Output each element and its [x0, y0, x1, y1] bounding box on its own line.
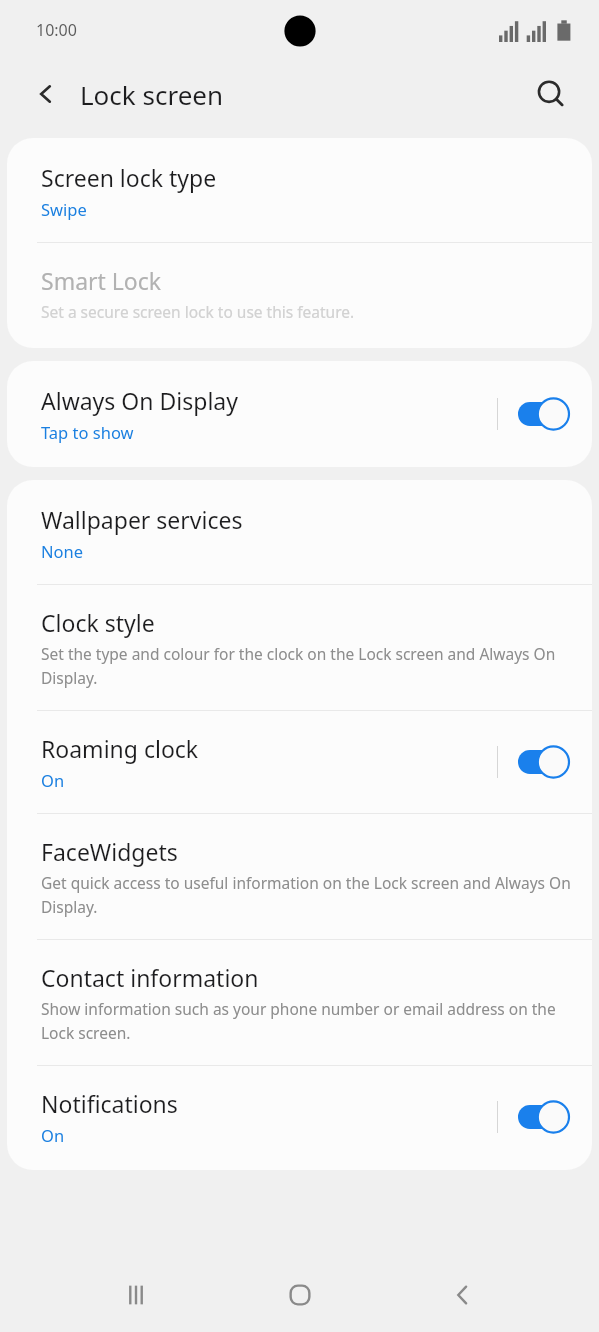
staticText: Tap to show: [41, 421, 134, 443]
button[interactable]: Recent apps: [108, 1267, 164, 1323]
button[interactable]: Wallpaper services: [7, 480, 592, 584]
staticText: Show information such as your phone numb…: [41, 998, 572, 1043]
button[interactable]: Toggle: [518, 745, 572, 779]
staticText: Set the type and colour for the clock on…: [41, 643, 572, 688]
button[interactable]: Search: [529, 72, 573, 116]
staticText: 10:00: [36, 19, 77, 41]
staticText: Wallpaper services: [41, 504, 243, 535]
staticText: Set a secure screen lock to use this fea…: [41, 301, 355, 322]
staticText: On: [41, 769, 65, 791]
button[interactable]: Smart Lock: [7, 243, 592, 348]
staticText: None: [41, 540, 84, 562]
staticText: Always On Display: [41, 385, 238, 416]
staticText: Swipe: [41, 198, 87, 220]
button[interactable]: Always On Display: [7, 361, 592, 467]
button[interactable]: Home: [272, 1267, 328, 1323]
staticText: FaceWidgets: [41, 836, 178, 867]
staticText: Notifications: [41, 1088, 178, 1119]
button[interactable]: Roaming clock: [7, 711, 592, 813]
button[interactable]: Clock style: [7, 585, 592, 710]
button[interactable]: Back: [435, 1267, 491, 1323]
button[interactable]: Back: [24, 72, 68, 116]
staticText: Screen lock type: [41, 162, 217, 193]
button[interactable]: Toggle: [518, 397, 572, 431]
staticText: Lock screen: [80, 77, 224, 112]
staticText: Roaming clock: [41, 733, 199, 764]
button[interactable]: Toggle: [518, 1100, 572, 1134]
button[interactable]: Notifications: [7, 1066, 592, 1170]
staticText: Smart Lock: [41, 265, 162, 296]
button[interactable]: Screen lock type: [7, 138, 592, 242]
staticText: Clock style: [41, 607, 155, 638]
button[interactable]: Contact information: [7, 940, 592, 1065]
staticText: Get quick access to useful information o…: [41, 872, 572, 917]
staticText: On: [41, 1124, 65, 1146]
staticText: Contact information: [41, 962, 259, 993]
button[interactable]: FaceWidgets: [7, 814, 592, 939]
